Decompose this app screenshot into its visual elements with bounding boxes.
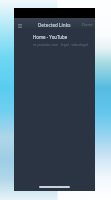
- button[interactable]: Home - YouTube: [14, 34, 95, 47]
- button[interactable]: Done: [80, 21, 95, 29]
- button[interactable]: Menu: [16, 22, 23, 29]
- staticText: m.youtube.com - legal - videolegal: [33, 42, 88, 47]
- staticText: Done: [82, 22, 93, 28]
- staticText: Detected Links: [38, 22, 71, 28]
- staticText: Home - YouTube: [33, 34, 68, 40]
